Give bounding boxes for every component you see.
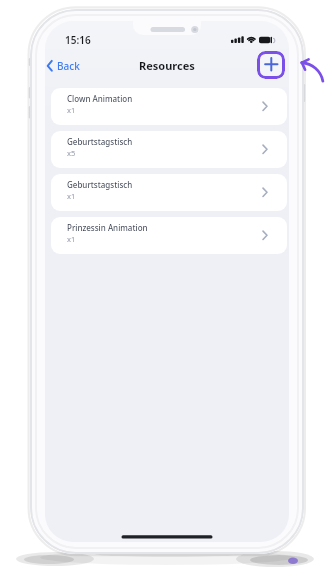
- staticText: x1: [67, 191, 76, 201]
- staticText: x1: [67, 105, 76, 115]
- staticText: 15:16: [65, 33, 91, 46]
- button[interactable]: Geburtstagstisch: [51, 174, 287, 211]
- button[interactable]: Clown Animation: [51, 88, 287, 125]
- button[interactable]: [257, 51, 285, 79]
- staticText: Geburtstagstisch: [67, 136, 133, 147]
- staticText: Back: [57, 59, 80, 73]
- staticText: Resources: [139, 58, 195, 73]
- button[interactable]: Back: [45, 57, 91, 74]
- staticText: x5: [67, 148, 76, 158]
- staticText: Prinzessin Animation: [67, 222, 148, 233]
- staticText: Geburtstagstisch: [67, 179, 133, 190]
- button[interactable]: Geburtstagstisch: [51, 131, 287, 168]
- button[interactable]: Prinzessin Animation: [51, 217, 287, 254]
- staticText: x1: [67, 234, 76, 244]
- staticText: Clown Animation: [67, 93, 133, 104]
